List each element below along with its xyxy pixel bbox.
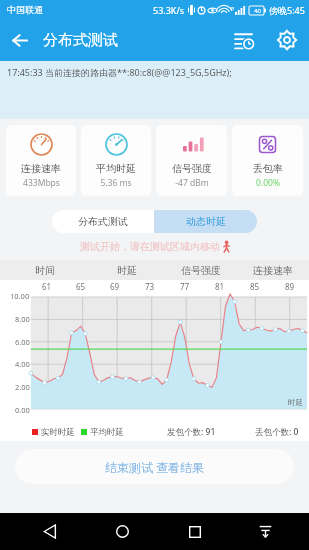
staticText: 动态时延 [186,215,226,228]
staticText: 中国联通 [7,4,43,15]
staticText: 测试开始，请在测试区域内移动 [80,240,220,253]
staticText: 8.00 [15,314,30,324]
button[interactable]: Hide navigation bar [246,513,284,550]
staticText: 10.00 [10,291,30,301]
staticText: 61 [42,281,52,292]
button[interactable]: Back [30,513,68,550]
staticText: 结束测试 查看结果 [105,459,205,475]
button[interactable]: Settings [265,19,309,61]
button[interactable]: 结束测试 查看结果 [15,449,294,484]
staticText: 2.00 [15,382,30,392]
staticText: " [231,5,235,16]
button[interactable]: 丢包率 [232,125,303,196]
staticText: 85 [250,281,260,292]
staticText: 连接速率 [21,162,61,175]
staticText: 5.36 ms [100,177,132,189]
staticText: 分布式测试 [43,31,118,50]
staticText: 17:45:33 当前连接的路由器**:80:c8(@@123_5G,5GHz)… [7,66,232,78]
staticText: 0.00% [256,177,280,189]
staticText: 连接速率 [253,264,293,277]
staticText: 69 [110,281,120,292]
staticText: 81 [215,281,225,292]
staticText: 时延 [288,398,303,407]
staticText: 发包个数: 91 [167,426,216,438]
staticText: 53.3K/s [153,4,185,16]
button[interactable]: Back [0,20,40,60]
staticText: 77 [180,281,190,292]
staticText: 平均时延 [96,162,136,175]
staticText: 73 [145,281,155,292]
button[interactable]: Home [103,513,141,550]
staticText: 丢包率 [253,162,283,175]
button[interactable]: 分布式测试 [52,210,154,233]
button[interactable]: History [223,19,265,61]
button[interactable]: 平均时延 [81,125,151,196]
staticText: 40 [254,7,261,15]
staticText: 6.00 [15,337,30,347]
staticText: 信号强度 [181,264,221,277]
staticText: 0.00 [15,405,30,415]
button[interactable]: 信号强度 [156,125,227,196]
staticText: 65 [76,281,86,292]
staticText: 89 [285,281,295,292]
staticText: 实时时延 [41,427,75,438]
staticText: 时间 [35,264,55,277]
button[interactable]: Recents [176,513,214,550]
staticText: 时延 [117,264,137,277]
staticText: 平均时延 [90,427,124,438]
staticText: 丢包个数: 0 [255,426,299,438]
staticText: 傍晚5:45 [269,4,305,16]
staticText: 4.00 [15,359,30,369]
staticText: 433Mbps [23,177,60,189]
staticText: 分布式测试 [78,215,128,228]
staticText: -47 dBm [175,177,209,189]
staticText: 信号强度 [172,162,212,175]
button[interactable]: 动态时延 [154,210,257,233]
button[interactable]: 连接速率 [6,125,76,196]
